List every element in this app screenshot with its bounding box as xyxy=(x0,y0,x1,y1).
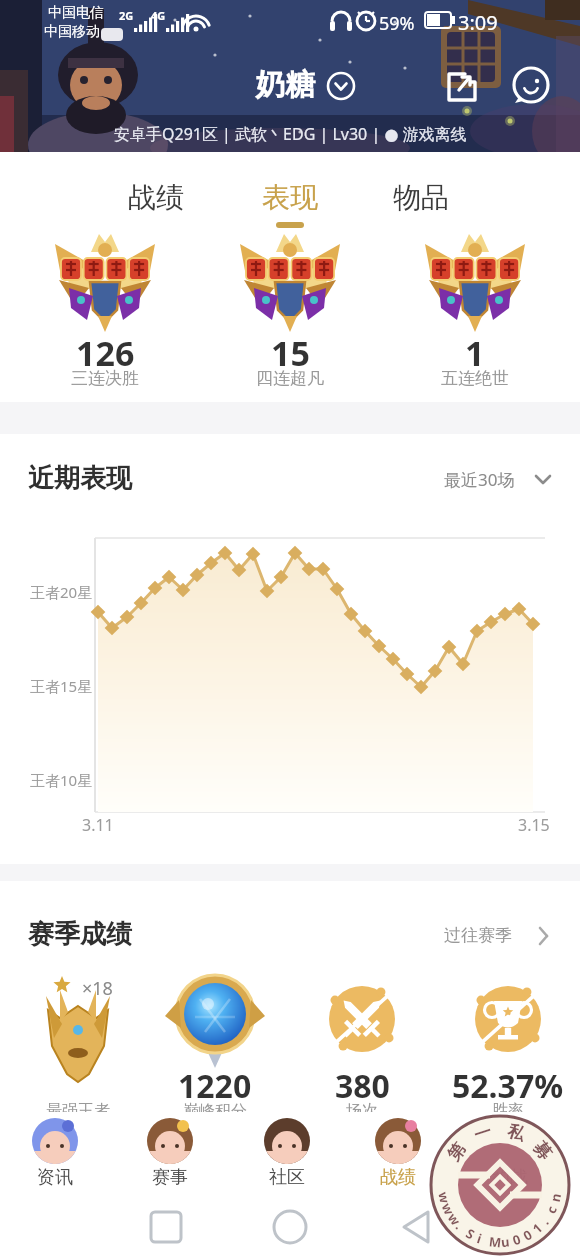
button[interactable] xyxy=(430,912,560,957)
staticText: 社区 xyxy=(269,1166,305,1189)
staticText: 380 xyxy=(335,1064,390,1108)
staticText: 胜率 xyxy=(492,1101,524,1121)
staticText: 126 xyxy=(76,330,135,376)
button[interactable] xyxy=(358,1114,438,1202)
staticText: 安卓手Q291区 | 武软丶EDG | Lv30 | ● 游戏离线 xyxy=(114,123,467,145)
staticText: 战绩 xyxy=(128,180,184,215)
button[interactable] xyxy=(240,160,340,226)
button[interactable] xyxy=(247,1114,327,1202)
button[interactable] xyxy=(440,62,490,108)
button[interactable] xyxy=(430,455,560,500)
staticText: 中国电信 xyxy=(48,4,104,22)
staticText: 最强王者 xyxy=(46,1101,110,1121)
staticText: 王者10星 xyxy=(30,770,93,790)
button[interactable] xyxy=(110,160,205,226)
staticText: 59% xyxy=(379,11,415,36)
staticText: 3:09 xyxy=(458,9,498,36)
staticText: 近期表现 xyxy=(28,462,132,495)
staticText: 王者15星 xyxy=(30,676,93,696)
staticText: 王者20星 xyxy=(30,582,93,602)
button[interactable] xyxy=(505,62,557,108)
staticText: 五连绝世 xyxy=(441,368,509,389)
staticText: 四连超凡 xyxy=(256,368,324,389)
staticText: 1 xyxy=(465,330,485,376)
staticText: 赛季成绩 xyxy=(28,918,132,951)
staticText: 物品 xyxy=(393,180,449,215)
staticText: 3.11 xyxy=(82,814,114,836)
staticText: 最近30场 xyxy=(444,468,515,491)
staticText: 表现 xyxy=(262,180,318,215)
staticText: 2G xyxy=(119,8,134,23)
staticText: 过往赛季 xyxy=(444,925,512,946)
staticText: 战绩 xyxy=(380,1166,416,1189)
staticText: 奶糖 xyxy=(255,66,315,104)
staticText: 1220 xyxy=(178,1064,252,1108)
staticText: 赛事 xyxy=(152,1166,188,1189)
button[interactable] xyxy=(375,160,470,226)
button[interactable] xyxy=(230,60,360,110)
button[interactable] xyxy=(130,1114,210,1202)
staticText: 资讯 xyxy=(37,1166,73,1189)
staticText: 场次 xyxy=(346,1101,378,1121)
staticText: ×18 xyxy=(82,976,113,1001)
staticText: 中国移动 xyxy=(44,23,100,41)
staticText: 15 xyxy=(271,330,310,376)
staticText: 4G xyxy=(151,8,166,23)
staticText: 3.15 xyxy=(518,814,550,836)
staticText: 三连决胜 xyxy=(71,368,139,389)
button[interactable] xyxy=(15,1114,95,1202)
staticText: 52.37% xyxy=(452,1064,564,1108)
staticText: 巅峰积分 xyxy=(183,1101,247,1121)
button[interactable] xyxy=(470,1114,550,1202)
staticText: 约战 xyxy=(492,1166,528,1189)
